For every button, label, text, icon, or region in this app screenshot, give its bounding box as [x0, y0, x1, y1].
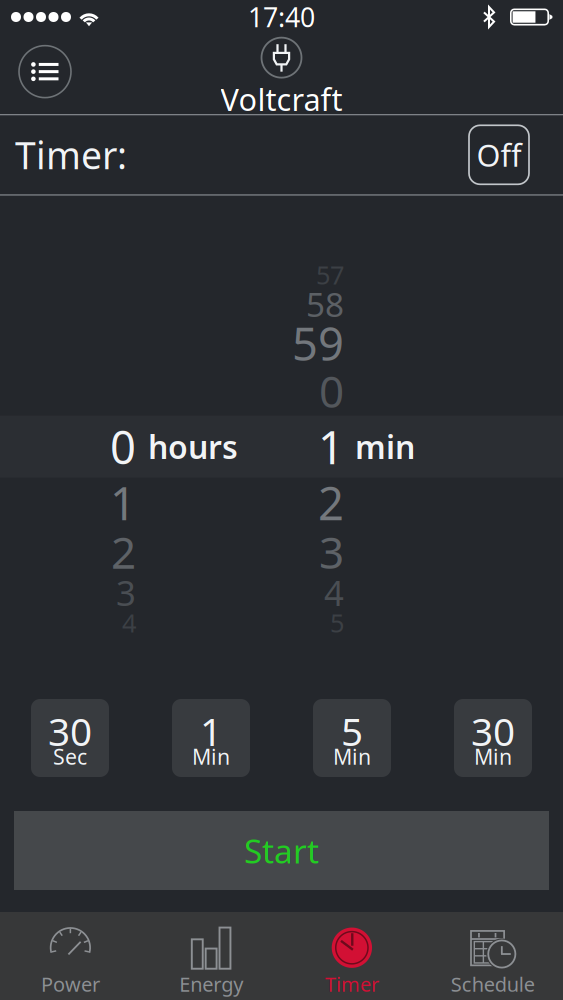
button[interactable]: 30 — [454, 699, 532, 777]
staticText: 30 — [48, 705, 92, 757]
staticText: Min — [474, 742, 512, 771]
staticText: 4 — [324, 570, 344, 616]
staticText: 59 — [292, 313, 344, 373]
staticText: 0 — [319, 361, 344, 420]
staticText: 57 — [316, 258, 344, 291]
staticText: 5 — [341, 705, 363, 757]
staticText: 2 — [318, 472, 344, 533]
staticText: Energy — [179, 971, 243, 997]
staticText: 17:40 — [248, 0, 315, 35]
staticText: 5 — [330, 606, 344, 639]
button[interactable]: Power — [0, 914, 141, 998]
staticText: Off — [476, 134, 521, 175]
staticText: Sec — [53, 742, 87, 771]
staticText: Timer — [325, 971, 379, 997]
staticText: 30 — [471, 705, 515, 757]
staticText: 1 — [318, 416, 344, 477]
button[interactable]: Timer — [281, 914, 422, 998]
staticText: hours — [148, 425, 238, 468]
button[interactable]: Off — [469, 125, 529, 184]
button[interactable]: 30 — [31, 699, 109, 777]
button[interactable]: 5 — [313, 699, 391, 777]
staticText: Start — [244, 828, 319, 873]
staticText: Voltcraft — [220, 79, 342, 119]
staticText: 0 — [110, 416, 136, 477]
staticText: min — [355, 425, 415, 468]
staticText: 1 — [200, 705, 222, 757]
staticText: Power — [41, 971, 100, 997]
staticText: 3 — [116, 570, 136, 616]
staticText: 58 — [306, 282, 344, 326]
button[interactable]: Start — [14, 811, 549, 890]
staticText: Min — [192, 742, 230, 771]
staticText: Schedule — [451, 971, 535, 997]
staticText: 1 — [110, 472, 136, 533]
button[interactable]: 1 — [172, 699, 250, 777]
button[interactable]: Energy — [141, 914, 282, 998]
staticText: 2 — [111, 522, 136, 581]
staticText: 3 — [319, 522, 344, 581]
staticText: Min — [333, 742, 371, 771]
staticText: 4 — [122, 606, 136, 639]
staticText: Timer: — [15, 130, 127, 180]
button[interactable]: Menu — [19, 46, 71, 98]
button[interactable]: Schedule — [422, 914, 563, 998]
